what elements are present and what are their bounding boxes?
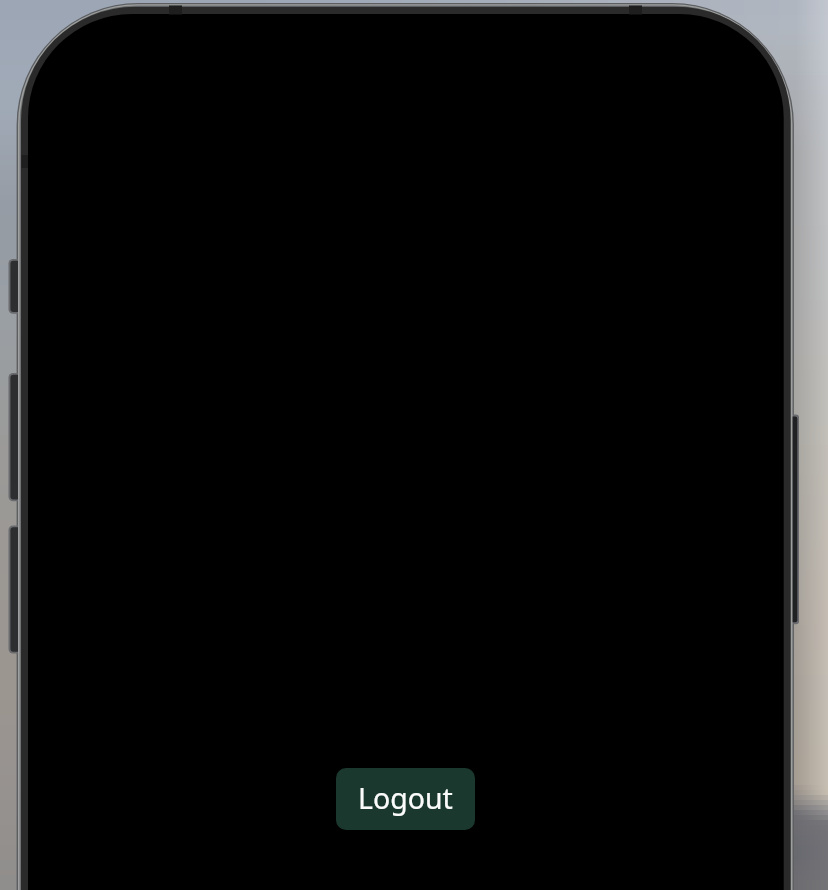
- button[interactable]: Logout: [336, 768, 475, 830]
- staticText: Logout: [358, 779, 453, 818]
